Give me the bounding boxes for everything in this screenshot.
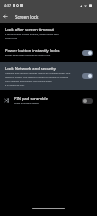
button[interactable]: Back — [0, 11, 11, 22]
button[interactable]: PIN pad scramble — [0, 96, 97, 105]
button[interactable]: Toggle on — [82, 73, 93, 79]
button[interactable]: Toggle off — [82, 98, 93, 104]
staticText: Lock Network and security — [5, 66, 56, 72]
staticText: Lock after screen timeout — [5, 27, 54, 33]
button[interactable]: Lock Network and security — [0, 62, 97, 90]
button[interactable]: Toggle on — [82, 50, 93, 56]
staticText: 5 seconds after screen timeout, except w… — [5, 33, 59, 39]
staticText: PIN pad scramble — [14, 96, 48, 102]
staticText: 4:37 — [4, 3, 12, 8]
staticText: When unlocking device — [14, 102, 39, 105]
staticText: Network and security settings cannot be … — [5, 72, 71, 86]
button[interactable]: Lock after screen timeout — [0, 27, 97, 39]
staticText: Power button instantly locks — [5, 48, 60, 54]
button[interactable]: Power button instantly locks — [0, 48, 97, 57]
staticText: Screen lock — [15, 14, 39, 20]
staticText: Except when kept unlocked by Smart Lock — [5, 54, 51, 57]
